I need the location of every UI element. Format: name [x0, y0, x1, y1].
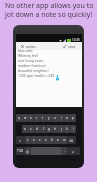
button[interactable]: ?123 — [16, 147, 25, 155]
staticText: k — [66, 127, 68, 131]
staticText: No other app allows you to jot down a no… — [5, 1, 94, 19]
button[interactable]: i — [58, 114, 64, 122]
button[interactable]: l — [70, 125, 76, 133]
staticText: a — [24, 127, 26, 131]
button[interactable]: w — [22, 114, 28, 122]
button[interactable]: ⇧ — [16, 136, 25, 144]
staticText: g — [48, 127, 50, 131]
staticText: v — [45, 138, 47, 142]
button[interactable]: h — [52, 125, 58, 133]
button[interactable]: s — [28, 125, 34, 133]
staticText: 12:45 — [72, 38, 80, 42]
staticText: e — [30, 116, 32, 120]
button[interactable]: z — [25, 136, 31, 144]
button[interactable]: o — [64, 114, 70, 122]
staticText: z — [27, 138, 29, 142]
button[interactable]: Save — [62, 44, 66, 48]
button[interactable]: ↵ — [67, 147, 80, 155]
staticText: h — [54, 127, 56, 131]
staticText: s — [30, 127, 32, 131]
button[interactable]: m — [61, 136, 67, 144]
button[interactable]: . — [61, 147, 67, 155]
staticText: j — [61, 127, 62, 131]
staticText: w — [24, 116, 27, 120]
staticText: n — [57, 138, 59, 142]
staticText: u — [54, 116, 56, 120]
staticText: i — [61, 116, 62, 120]
button[interactable]: f — [40, 125, 46, 133]
button[interactable]: t — [40, 114, 46, 122]
button[interactable]: q — [16, 114, 22, 122]
staticText: notes — [26, 44, 36, 49]
button[interactable]: b — [49, 136, 55, 144]
staticText: . — [64, 149, 65, 153]
staticText: t — [42, 116, 44, 120]
staticText: blue attic — [18, 48, 33, 53]
staticText: beautiful neighbor! — [18, 68, 49, 73]
staticText: q — [18, 116, 20, 120]
staticText: ↵ — [72, 150, 75, 153]
staticText: ⇧ — [19, 139, 22, 142]
button[interactable]: v — [43, 136, 49, 144]
staticText: c — [39, 138, 41, 142]
button[interactable]: c — [37, 136, 43, 144]
staticText: m — [63, 138, 66, 142]
staticText: save — [68, 44, 76, 49]
button[interactable]: k — [64, 125, 70, 133]
button[interactable]: n — [55, 136, 61, 144]
staticText: p — [72, 116, 74, 120]
staticText: ☺ — [26, 150, 30, 153]
button[interactable]: r — [34, 114, 40, 122]
button[interactable]: ⌫ — [67, 136, 76, 144]
button[interactable]: j — [58, 125, 64, 133]
button[interactable]: y — [46, 114, 52, 122]
staticText: ⌫ — [69, 139, 74, 142]
button[interactable]: a — [22, 125, 28, 133]
staticText: r — [36, 116, 38, 120]
staticText: b — [51, 138, 53, 142]
button[interactable]: d — [34, 125, 40, 133]
button[interactable]: p — [70, 114, 76, 122]
button[interactable]: Close — [20, 44, 24, 48]
staticText: f — [43, 127, 44, 131]
staticText: 1230 gsm health = 34% — [18, 73, 55, 78]
staticText: l — [73, 127, 74, 131]
staticText: Whitney feel — [18, 53, 38, 58]
staticText: x — [33, 138, 35, 142]
staticText: y — [48, 116, 50, 120]
button[interactable]: e — [28, 114, 34, 122]
staticText: o — [66, 116, 68, 120]
button[interactable]: g — [46, 125, 52, 133]
staticText: ?123 — [17, 149, 24, 153]
staticText: d — [36, 127, 38, 131]
button[interactable]: x — [31, 136, 37, 144]
button[interactable]: ☺ — [25, 147, 31, 155]
button[interactable]: u — [52, 114, 58, 122]
staticText: nice living room — [18, 58, 44, 63]
staticText: modern furniture — [18, 63, 46, 68]
